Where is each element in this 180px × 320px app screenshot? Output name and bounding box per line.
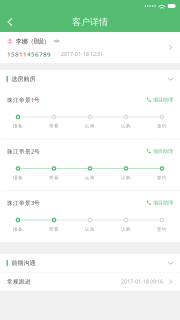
staticText: 项目助理 (153, 148, 173, 155)
staticText: 认购 (121, 175, 131, 180)
staticText: 李娜（B级） (15, 37, 49, 45)
staticText: 15811456789 (7, 50, 51, 58)
staticText: 报备 (13, 175, 23, 180)
button[interactable]: 项目助理 (146, 97, 173, 103)
button[interactable]: 项目助理 (146, 200, 173, 206)
staticText: 报备 (13, 123, 23, 129)
staticText: 客户详情 (72, 16, 108, 28)
staticText: 认筹 (85, 175, 95, 180)
staticText: 项目助理 (153, 200, 173, 206)
staticText: 认筹 (85, 123, 95, 129)
staticText: 珠江帝景2号 (7, 147, 40, 155)
staticText: 带看 (49, 226, 59, 232)
button[interactable]: 前期沟通 (0, 254, 180, 272)
staticText: 2017-01-18 09:16 (121, 278, 163, 285)
staticText: 选房购房 (11, 75, 35, 83)
staticText: 签约 (157, 226, 167, 232)
staticText: 带看 (49, 175, 59, 180)
staticText: 2017-01-18 12:31 (61, 51, 103, 58)
staticText: 前期沟通 (11, 259, 35, 267)
staticText: 认购 (121, 123, 131, 129)
staticText: 签约 (157, 175, 167, 180)
button[interactable]: 常规跟进 (0, 273, 180, 291)
staticText: 报备 (13, 226, 23, 232)
staticText: 珠江帝景1号 (7, 96, 40, 104)
staticText: 认购 (121, 226, 131, 232)
staticText: 常规跟进 (7, 278, 31, 285)
staticText: 认筹 (85, 226, 95, 232)
staticText: 项目助理 (153, 97, 173, 103)
button[interactable]: 返回 (0, 12, 20, 32)
staticText: 签约 (157, 123, 167, 129)
staticText: 珠江帝景3号 (7, 199, 40, 207)
button[interactable]: 项目助理 (146, 148, 173, 155)
button[interactable]: 李娜（B级） (0, 32, 180, 63)
staticText: 带看 (49, 123, 59, 129)
button[interactable]: 选房购房 (0, 70, 180, 88)
